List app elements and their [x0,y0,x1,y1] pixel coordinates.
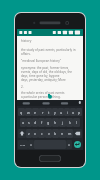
button[interactable]: history [17,36,83,100]
button[interactable]: x [32,129,38,138]
button[interactable]: s [26,118,32,127]
staticText: z [28,131,30,136]
button[interactable]: v [45,129,52,138]
staticText: r [42,110,44,115]
button[interactable]: o [70,108,76,116]
button[interactable]: Comma [28,140,34,149]
staticText: h [54,120,57,125]
staticText: a [22,120,25,125]
button[interactable]: Home [39,155,61,162]
button[interactable]: f [38,118,45,127]
staticText: n [61,131,64,136]
staticText: events, days of old, the old days, the g… [21,70,79,74]
staticText: c [41,131,43,136]
button[interactable]: k [66,118,73,127]
staticText: l [76,120,77,125]
button[interactable]: ?123 [18,140,28,149]
staticText: f [41,120,43,125]
staticText: days, yesterday, antiquity; More [21,78,66,82]
button[interactable]: e [32,108,39,116]
staticText: p [78,110,81,115]
button[interactable]: Enter [74,141,81,148]
staticText: the study of past events, particularly i… [21,48,79,52]
staticText: v [48,131,50,136]
button[interactable]: l [73,118,80,127]
button[interactable]: u [58,108,64,116]
button[interactable]: n [59,129,66,138]
staticText: t [48,110,50,115]
staticText: e [34,110,37,115]
staticText: a particular person or thing. [21,95,61,99]
staticText: q [20,110,23,115]
staticText: x [34,131,36,136]
staticText: history [21,39,32,43]
staticText: s [28,120,30,125]
staticText: 2. [21,85,24,89]
staticText: synonyms: the past, former times, histor… [21,66,79,70]
button[interactable]: a [20,118,26,127]
button[interactable]: w [25,108,32,116]
staticText: m [68,131,72,136]
staticText: "medieval European history" [21,59,62,63]
button[interactable]: c [38,129,45,138]
button[interactable]: g [45,118,52,127]
staticText: ?123 [20,143,26,146]
button[interactable]: q [18,108,25,116]
button[interactable]: z [26,129,32,138]
button[interactable]: j [59,118,66,127]
staticText: the whole series of past events connecte… [21,91,79,95]
staticText: days, time gone by, bygone [21,74,60,78]
staticText: affairs. [21,52,31,56]
staticText: u [60,110,63,115]
staticText: g [47,120,50,125]
button[interactable]: i [64,108,70,116]
button[interactable]: b [52,129,59,138]
staticText: w [27,110,30,115]
button[interactable]: r [39,108,46,116]
button[interactable]: y [52,108,58,116]
staticText: d [34,120,37,125]
staticText: o [72,110,75,115]
button[interactable]: Period [66,140,72,149]
button[interactable]: Shift [18,129,26,138]
staticText: j [62,120,63,125]
staticText: b [54,131,57,136]
button[interactable]: p [76,108,82,116]
button[interactable]: t [46,108,52,116]
staticText: k [69,120,71,125]
staticText: i [67,110,68,115]
button[interactable]: m [66,129,73,138]
staticText: y [54,110,56,115]
button[interactable]: Backspace [73,129,82,138]
button[interactable]: h [52,118,59,127]
button[interactable]: d [32,118,38,127]
